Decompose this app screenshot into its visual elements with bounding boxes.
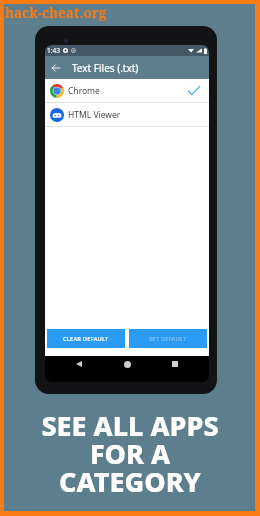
button[interactable]: SET DEFAULT [129, 329, 207, 348]
staticText: SET DEFAULT [149, 335, 187, 343]
button[interactable]: Home [120, 357, 134, 371]
staticText: Chrome [68, 85, 100, 97]
button[interactable]: Back [72, 357, 86, 371]
staticText: SEE ALL APPS FOR A CATEGORY [41, 407, 219, 500]
button[interactable]: Back [48, 60, 64, 76]
staticText: Text Files (.txt) [72, 61, 139, 75]
button[interactable]: HTML Viewer [45, 103, 209, 126]
staticText: HTML Viewer [68, 109, 121, 121]
staticText: hack-cheat.org [5, 4, 107, 22]
button[interactable]: CLEAR DEFAULT [47, 329, 125, 348]
staticText: CLEAR DEFAULT [63, 335, 109, 343]
button[interactable]: Chrome [45, 79, 209, 102]
staticText: 1:43 [47, 46, 60, 55]
button[interactable]: Recents [168, 357, 182, 371]
